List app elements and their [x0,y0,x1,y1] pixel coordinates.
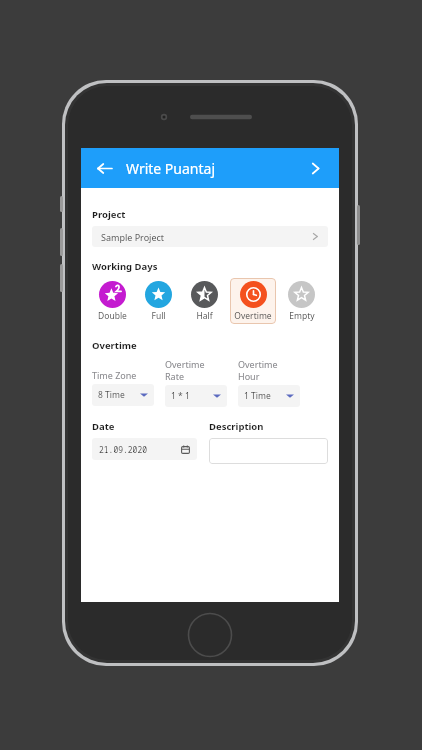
staticText: Overtime [238,358,278,370]
staticText: Overtime [92,339,137,352]
staticText: Rate [165,370,184,382]
button[interactable]: Full [138,278,179,324]
button[interactable]: 21.09.2020 [92,438,197,460]
button[interactable]: 8 Time [92,384,154,406]
button[interactable]: 1 Time [238,385,300,407]
button[interactable]: Empty [281,278,322,324]
button[interactable]: Back [91,155,117,181]
staticText: Project [92,208,126,221]
staticText: Overtime [234,310,272,322]
staticText: 1 Time [244,390,286,402]
button[interactable]: Double [92,278,133,324]
staticText: Full [151,310,166,322]
staticText: Overtime [165,358,205,370]
staticText: Time Zone [92,369,137,381]
staticText: 8 Time [98,389,140,401]
button[interactable]: Half [184,278,225,324]
staticText: Sample Project [101,231,312,243]
staticText: Double [98,310,127,322]
staticText: Empty [289,310,315,322]
button[interactable]: Next [303,156,327,180]
button[interactable]: Overtime [230,278,276,324]
staticText: Hour [238,370,260,382]
button[interactable]: 1 * 1 [165,385,227,407]
button[interactable]: Sample Project [92,226,328,247]
staticText: Date [92,420,115,433]
staticText: Half [196,310,213,322]
staticText: 1 * 1 [171,390,213,402]
staticText: Working Days [92,260,158,273]
button[interactable] [209,438,328,464]
staticText: 21.09.2020 [99,444,181,455]
staticText: Description [209,420,264,433]
staticText: Write Puantaj [126,159,303,178]
